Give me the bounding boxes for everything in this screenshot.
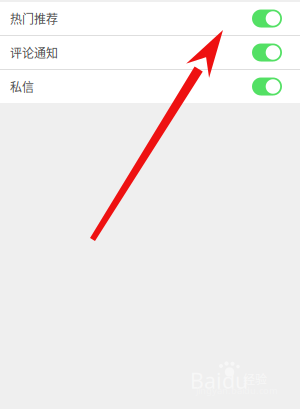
button[interactable]: 热门推荐 [0,2,300,35]
button[interactable]: 私信 [252,77,282,95]
staticText: 热门推荐 [10,10,58,27]
staticText: 评论通知 [10,44,58,61]
staticText: 私信 [10,78,34,95]
button[interactable]: 评论通知 [0,36,300,69]
button[interactable]: 私信 [0,70,300,103]
button[interactable]: 评论通知 [252,43,282,61]
button[interactable]: 热门推荐 [252,9,282,27]
